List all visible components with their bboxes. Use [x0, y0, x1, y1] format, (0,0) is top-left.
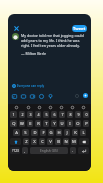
staticText: 0 [85, 112, 88, 117]
button[interactable]: , [22, 147, 28, 154]
button[interactable]: 7 [59, 111, 65, 118]
button[interactable]: V [47, 138, 53, 145]
staticText: U [60, 121, 64, 127]
button[interactable]: C [39, 138, 45, 145]
button[interactable]: kbtool5 [67, 104, 78, 110]
staticText: H [57, 130, 61, 136]
staticText: 3 [29, 112, 32, 117]
staticText: E [29, 121, 32, 127]
button[interactable]: U [59, 120, 65, 127]
button[interactable]: Backspace [79, 138, 89, 145]
button[interactable]: T [43, 120, 49, 127]
staticText: 1 [12, 112, 15, 117]
staticText: 8 [69, 112, 72, 117]
button[interactable]: 5 [43, 111, 49, 118]
staticText: 7 [61, 112, 64, 117]
staticText: 6 [53, 112, 56, 117]
button[interactable]: 6 [51, 111, 57, 118]
staticText: T [45, 121, 48, 127]
button[interactable]: 3 [27, 111, 33, 118]
button[interactable]: R [35, 120, 41, 127]
staticText: G [49, 130, 53, 136]
button[interactable]: 1 [10, 111, 17, 118]
staticText: C [41, 139, 44, 145]
staticText: ?123 [12, 149, 19, 153]
staticText: V [49, 139, 52, 145]
button[interactable]: Location [46, 92, 54, 100]
button[interactable]: L [80, 129, 86, 136]
button[interactable]: X [31, 138, 37, 145]
button[interactable]: kbtool2 [34, 104, 45, 110]
staticText: 9 [77, 112, 80, 117]
staticText: R [37, 121, 40, 127]
staticText: K [74, 130, 77, 136]
button[interactable]: 8 [67, 111, 73, 118]
staticText: M [72, 139, 76, 145]
button[interactable]: A [13, 129, 20, 136]
button[interactable]: Z [23, 138, 29, 145]
button[interactable]: GIF [19, 92, 27, 100]
button[interactable]: H [56, 129, 62, 136]
staticText: English (US) [40, 149, 58, 153]
button[interactable]: Poll [28, 92, 36, 100]
button[interactable]: 4 [35, 111, 41, 118]
button[interactable]: I [67, 120, 73, 127]
button[interactable]: 0 [83, 111, 89, 118]
button[interactable]: W [19, 120, 25, 127]
button[interactable]: Y [51, 120, 57, 127]
staticText: S [24, 130, 27, 136]
button[interactable]: D [31, 129, 38, 136]
button[interactable]: B [55, 138, 61, 145]
staticText: Z [25, 139, 28, 145]
button[interactable]: Q [10, 120, 17, 127]
button[interactable]: K [72, 129, 78, 136]
staticText: L [82, 130, 85, 136]
button[interactable]: kbtool0 [10, 104, 22, 110]
staticText: Everyone can reply [17, 84, 45, 88]
button[interactable]: ?123 [10, 147, 20, 154]
button[interactable]: S [22, 129, 29, 136]
button[interactable]: P [83, 120, 89, 127]
staticText: N [64, 139, 68, 145]
button[interactable]: Shift [10, 138, 21, 145]
button[interactable]: kbtool6 [78, 104, 89, 110]
button[interactable]: Close [12, 24, 21, 33]
staticText: — Milton Berle [21, 51, 47, 56]
staticText: Y [53, 121, 56, 127]
button[interactable]: Media [10, 92, 18, 100]
staticText: 2 [21, 112, 24, 117]
staticText: J [66, 130, 68, 136]
staticText: My doctor told me that jogging could add… [21, 33, 88, 48]
button[interactable]: kbtool1 [22, 104, 34, 110]
staticText: O [76, 121, 80, 127]
staticText: B [57, 139, 60, 145]
staticText: 4 [37, 112, 40, 117]
staticText: , [24, 148, 26, 153]
staticText: 5 [45, 112, 48, 117]
staticText: Q [12, 121, 16, 127]
button[interactable]: English (US) [30, 147, 68, 154]
button[interactable]: Add tweet [83, 93, 88, 98]
button[interactable]: . [70, 147, 76, 154]
button[interactable]: kbtool3 [45, 104, 56, 110]
staticText: W [20, 121, 24, 127]
staticText: D [33, 130, 37, 136]
button[interactable]: N [63, 138, 69, 145]
staticText: F [42, 130, 45, 136]
button[interactable]: J [64, 129, 70, 136]
staticText: X [33, 139, 36, 145]
button[interactable]: G [48, 129, 54, 136]
button[interactable]: F [40, 129, 46, 136]
button[interactable]: M [71, 138, 77, 145]
button[interactable]: 9 [75, 111, 81, 118]
button[interactable]: Emoji [37, 92, 45, 100]
button[interactable]: kbtool4 [56, 104, 67, 110]
button[interactable]: 2 [19, 111, 25, 118]
button[interactable]: Tweet [72, 25, 87, 32]
button[interactable]: Enter [78, 147, 89, 154]
button[interactable]: E [27, 120, 33, 127]
staticText: . [72, 148, 74, 153]
staticText: Tweet [73, 26, 86, 31]
staticText: I [69, 121, 71, 127]
button[interactable]: O [75, 120, 81, 127]
